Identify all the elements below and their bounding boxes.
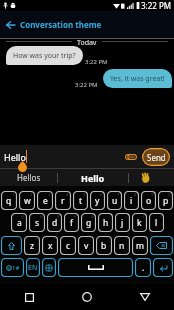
button[interactable]: l: [149, 213, 164, 232]
button[interactable]: Enter: [153, 258, 173, 277]
staticText: Hello: [81, 172, 105, 184]
button[interactable]: Symbols: [1, 258, 24, 277]
staticText: s: [35, 217, 40, 229]
button[interactable]: i: [124, 191, 139, 210]
staticText: 2: [30, 192, 33, 197]
staticText: b: [101, 240, 107, 252]
staticText: EN: [28, 263, 38, 273]
staticText: a: [17, 217, 22, 229]
button[interactable]: Home: [58, 284, 116, 310]
button[interactable]: g: [81, 213, 96, 232]
staticText: 3:22 PM: [75, 81, 98, 89]
staticText: n: [119, 240, 125, 252]
staticText: $: [57, 214, 60, 219]
staticText: How was your trip?: [13, 51, 76, 61]
staticText: r: [61, 195, 65, 207]
button[interactable]: o: [141, 191, 156, 210]
staticText: 0: [168, 192, 171, 197]
staticText: Hellos: [17, 172, 41, 183]
staticText: m: [136, 240, 144, 252]
button[interactable]: v: [78, 236, 94, 255]
staticText: g: [86, 217, 92, 229]
button[interactable]: Space: [58, 258, 133, 277]
staticText: Conversation theme: [20, 19, 102, 30]
staticText: 4: [66, 192, 69, 197]
staticText: Yes, it was great!: [110, 74, 165, 84]
button[interactable]: c: [60, 236, 76, 255]
staticText: :: [90, 237, 92, 242]
button[interactable]: q: [1, 191, 17, 210]
staticText: Send: [147, 152, 166, 163]
button[interactable]: t: [73, 191, 88, 210]
button[interactable]: n: [114, 236, 130, 255]
staticText: k: [137, 217, 142, 229]
button[interactable]: r: [55, 191, 71, 210]
button[interactable]: x: [42, 236, 58, 255]
staticText: w: [24, 195, 31, 207]
staticText: u: [112, 195, 118, 207]
staticText: 7: [117, 192, 120, 197]
staticText: 3:22 PM: [141, 0, 172, 11]
staticText: #: [40, 214, 43, 219]
staticText: -: [109, 214, 111, 219]
staticText: Hello: [4, 151, 26, 163]
staticText: +: [125, 214, 128, 219]
button[interactable]: Hellos: [0, 169, 57, 186]
button[interactable]: p: [158, 191, 173, 210]
staticText: o: [146, 195, 152, 207]
button[interactable]: Language: [26, 258, 40, 277]
button[interactable]: e: [37, 191, 53, 210]
staticText: c: [66, 240, 71, 252]
staticText: !: [126, 237, 128, 242]
button[interactable]: Emoji: [129, 169, 174, 186]
button[interactable]: u: [107, 191, 122, 210]
button[interactable]: Shift: [1, 236, 22, 255]
staticText: x: [48, 240, 53, 252]
button[interactable]: w: [19, 191, 35, 210]
button[interactable]: z: [24, 236, 40, 255]
staticText: Today: [77, 38, 97, 45]
staticText: d: [52, 217, 58, 229]
button[interactable]: Navigate up: [0, 11, 20, 38]
staticText: 6: [100, 192, 103, 197]
staticText: 5: [83, 192, 86, 197]
button[interactable]: j: [115, 213, 130, 232]
staticText: y: [95, 195, 100, 207]
button[interactable]: Recent apps: [0, 284, 58, 310]
button[interactable]: Yes, it was great!: [103, 69, 172, 88]
button[interactable]: d: [47, 213, 62, 232]
staticText: 3: [48, 192, 51, 197]
button[interactable]: Send: [142, 148, 170, 166]
button[interactable]: b: [96, 236, 112, 255]
staticText: e: [43, 195, 48, 207]
button[interactable]: y: [90, 191, 105, 210]
staticText: 8: [134, 192, 137, 197]
button[interactable]: Hello: [58, 169, 128, 186]
staticText: .: [142, 262, 145, 274]
staticText: 3:22 PM: [85, 58, 108, 66]
staticText: *: [35, 237, 38, 242]
button[interactable]: Attach file: [121, 147, 140, 166]
button[interactable]: k: [132, 213, 147, 232]
button[interactable]: Back: [116, 284, 174, 310]
button[interactable]: m: [132, 236, 148, 255]
button[interactable]: Backspace: [150, 236, 173, 255]
staticText: ): [160, 214, 162, 219]
staticText: h: [103, 217, 109, 229]
staticText: %: [73, 214, 77, 219]
staticText: 9: [151, 192, 154, 197]
staticText: f: [70, 217, 73, 229]
button[interactable]: How was your trip?: [6, 46, 83, 65]
staticText: l: [155, 217, 158, 229]
staticText: t: [79, 195, 83, 207]
button[interactable]: Period: [135, 258, 151, 277]
staticText: j: [121, 217, 124, 229]
staticText: (: [143, 214, 145, 219]
button[interactable]: s: [29, 213, 45, 232]
staticText: 1#: [12, 264, 20, 272]
staticText: i: [130, 195, 133, 207]
button[interactable]: f: [64, 213, 79, 232]
button[interactable]: h: [98, 213, 113, 232]
button[interactable]: a: [11, 213, 27, 232]
button[interactable]: Keyboard settings: [42, 258, 56, 277]
